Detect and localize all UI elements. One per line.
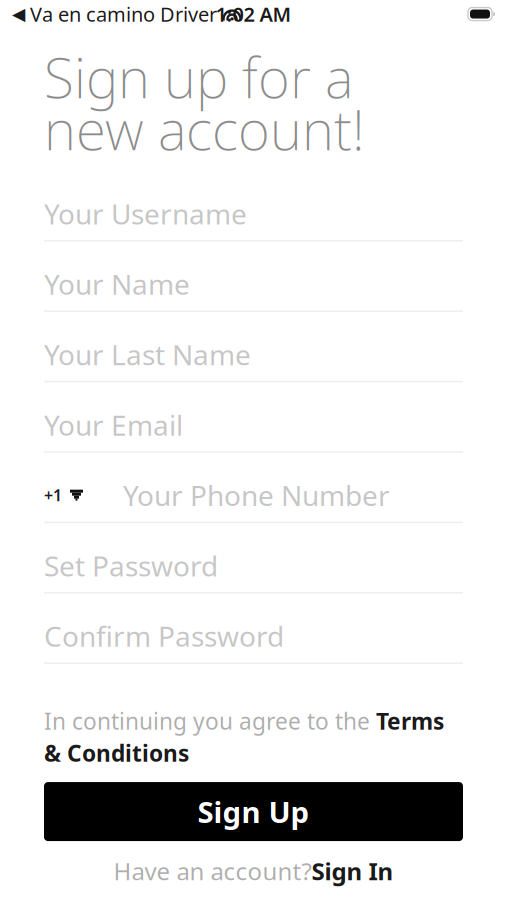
staticText: Terms	[376, 706, 444, 736]
staticText: Your Name	[44, 265, 190, 303]
staticText: Set Password	[44, 547, 218, 584]
staticText: Your Username	[44, 195, 247, 232]
staticText: Va en camino Driver	[30, 1, 217, 27]
staticText: Sign In	[311, 855, 393, 887]
staticText: & Conditions	[44, 738, 189, 768]
staticText: Your Last Name	[44, 336, 251, 373]
staticText: Sign up for a	[44, 41, 353, 113]
staticText: Your Email	[44, 406, 183, 443]
staticText: Confirm Password	[44, 617, 284, 655]
staticText: Sign Up	[197, 792, 309, 831]
staticText: new account!	[44, 93, 365, 165]
staticText: Have an account?	[113, 855, 311, 887]
staticText: Your Phone Number	[123, 477, 390, 514]
button[interactable]: In continuing you agree to the	[0, 680, 507, 778]
staticText: ◀	[12, 4, 25, 24]
staticText: In continuing you agree to the	[44, 706, 376, 736]
staticText: +1	[44, 484, 62, 506]
button[interactable]: Sign Up	[44, 782, 463, 841]
button[interactable]: Have an account?	[0, 841, 507, 900]
button[interactable]: Select country calling code	[44, 469, 83, 522]
staticText: 1:02 AM	[215, 1, 291, 27]
